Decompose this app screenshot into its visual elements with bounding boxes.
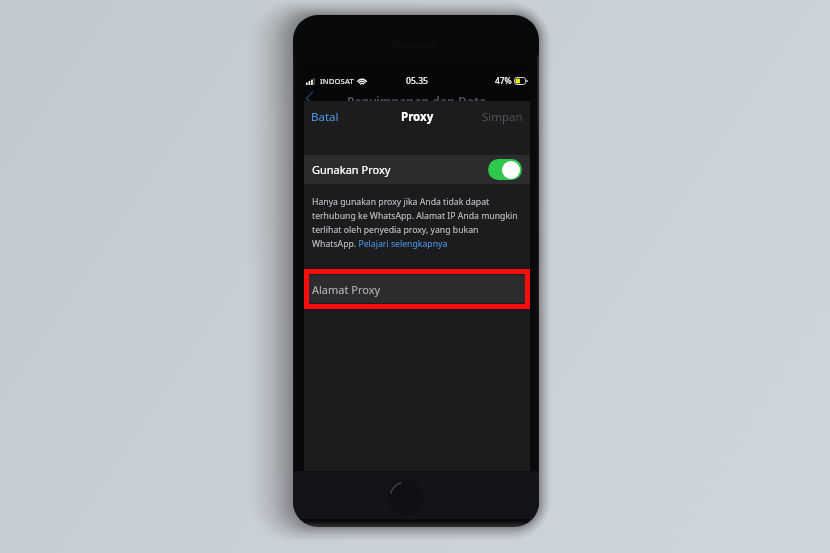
button[interactable]: Simpan bbox=[475, 102, 530, 132]
other: Gunakan Proxy toggle bbox=[488, 159, 522, 180]
staticText: Penyimpanan dan Data bbox=[347, 93, 487, 105]
button[interactable]: Alamat Proxy bbox=[304, 275, 530, 303]
staticText: Simpan bbox=[482, 109, 523, 125]
button[interactable]: Gunakan Proxy bbox=[304, 155, 530, 184]
staticText: 47% bbox=[495, 75, 512, 86]
button[interactable]: Kembali bbox=[305, 92, 313, 103]
staticText: Proxy bbox=[401, 109, 434, 125]
button[interactable]: Batal bbox=[304, 102, 346, 132]
button[interactable]: Home bbox=[387, 479, 424, 516]
staticText: Alamat Proxy bbox=[312, 282, 381, 297]
staticText: Gunakan Proxy bbox=[312, 162, 391, 177]
staticText: 05.35 bbox=[406, 75, 429, 87]
staticText: Hanya gunakan proxy jika Anda tidak dapa… bbox=[312, 196, 524, 249]
staticText: INDOSAT bbox=[320, 76, 354, 86]
staticText: Batal bbox=[311, 109, 339, 125]
